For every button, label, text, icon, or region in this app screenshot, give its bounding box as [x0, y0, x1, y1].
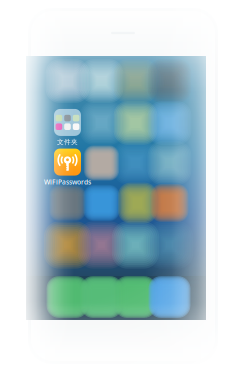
button[interactable]: WiFiPasswords: [44, 149, 91, 186]
staticText: 文件夹: [57, 138, 78, 146]
staticText: WiFiPasswords: [44, 178, 91, 186]
button[interactable]: 文件夹: [54, 109, 81, 146]
